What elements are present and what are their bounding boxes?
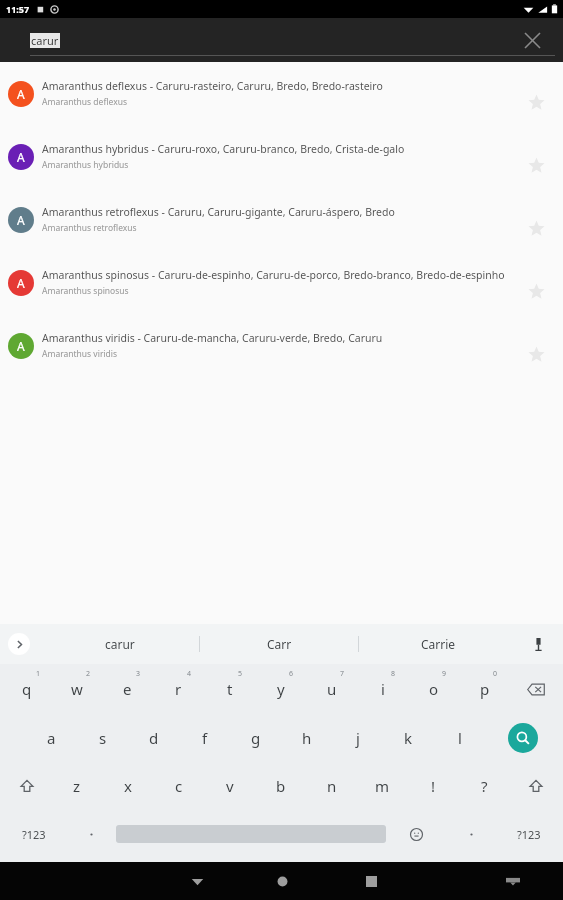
staticText: d [149,728,159,748]
staticText: e [123,679,132,699]
staticText: 0 [493,669,498,679]
staticText: b [276,776,286,796]
staticText: A [17,149,25,165]
button[interactable]: d [128,714,179,762]
button[interactable]: Backspace [510,664,561,714]
button[interactable]: Home [263,862,301,900]
button[interactable]: z [52,762,102,810]
staticText: f [202,728,208,748]
button[interactable]: w [52,664,102,714]
button[interactable]: m [357,762,408,810]
button[interactable]: Shift [510,762,561,810]
button[interactable]: A [0,125,563,188]
staticText: Amaranthus hybridus - Caruru-roxo, Carur… [42,142,405,156]
button[interactable]: carur [30,33,60,48]
button[interactable]: q [2,664,52,714]
staticText: p [480,679,490,699]
button[interactable]: n [306,762,357,810]
button[interactable]: Favorite [519,211,553,245]
button[interactable]: y [255,664,306,714]
button[interactable]: Favorite [519,148,553,182]
staticText: 2 [86,669,91,679]
button[interactable]: More suggestions [8,633,30,655]
staticText: A [17,212,25,228]
button[interactable]: o [408,664,459,714]
staticText: o [429,679,439,699]
button[interactable]: v [204,762,255,810]
staticText: i [381,679,385,699]
button[interactable]: ! [408,762,459,810]
staticText: Amaranthus deflexus [42,96,127,108]
staticText: Amaranthus spinosus [42,285,129,297]
button[interactable]: h [281,714,332,762]
staticText: h [302,728,312,748]
button[interactable]: Carrie [359,624,517,664]
staticText: j [356,728,360,748]
button[interactable]: A [0,251,563,314]
button[interactable]: s [77,714,128,762]
staticText: m [375,776,390,796]
button[interactable]: Emoji [386,810,446,858]
button[interactable]: Voice input [523,629,553,659]
button[interactable]: a [26,714,77,762]
button[interactable]: Search [485,714,561,762]
button[interactable]: p [459,664,510,714]
staticText: s [99,728,107,748]
staticText: v [226,776,234,796]
staticText: Amaranthus retroflexus - Caruru, Caruru-… [42,205,395,219]
staticText: carur [105,636,135,652]
staticText: ! [431,776,436,796]
button[interactable]: Shift [2,762,52,810]
staticText: Amaranthus viridis - Caruru-de-mancha, C… [42,331,383,345]
button[interactable]: k [383,714,434,762]
button[interactable]: A [0,314,563,377]
staticText: Carr [267,636,292,652]
button[interactable]: Close search [515,23,549,57]
staticText: A [17,338,25,354]
staticText: Amaranthus viridis [42,348,118,360]
staticText: z [73,776,81,796]
staticText: 4 [187,669,192,679]
button[interactable]: Period [446,810,496,858]
button[interactable]: x [102,762,153,810]
staticText: Amaranthus spinosus - Caruru-de-espinho,… [42,268,505,282]
button[interactable]: j [332,714,383,762]
staticText: y [277,679,285,699]
button[interactable]: u [306,664,357,714]
button[interactable]: A [0,62,563,125]
button[interactable]: Carr [200,624,358,664]
button[interactable]: i [357,664,408,714]
button[interactable]: f [179,714,230,762]
button[interactable]: Comma [66,810,116,858]
button[interactable]: r [153,664,204,714]
button[interactable]: ?123 [496,810,561,858]
staticText: 5 [238,669,243,679]
button[interactable]: Switch keyboard [494,862,532,900]
button[interactable]: ? [459,762,510,810]
staticText: g [251,728,261,748]
button[interactable]: g [230,714,281,762]
button[interactable]: l [434,714,485,762]
button[interactable]: e [102,664,153,714]
button[interactable]: A [0,188,563,251]
button[interactable]: Recents [352,862,390,900]
button[interactable]: t [204,664,255,714]
staticText: 1 [36,669,41,679]
button[interactable]: c [153,762,204,810]
staticText: l [458,728,462,748]
staticText: A [17,86,25,102]
staticText: q [22,679,32,699]
button[interactable]: carur [40,624,199,664]
button[interactable]: Favorite [519,337,553,371]
staticText: r [175,679,182,699]
staticText: Amaranthus retroflexus [42,222,137,234]
button[interactable]: ?123 [2,810,66,858]
button[interactable]: Hide keyboard [178,862,216,900]
button[interactable]: Favorite [519,85,553,119]
staticText: 6 [289,669,294,679]
button[interactable]: Favorite [519,274,553,308]
button[interactable]: b [255,762,306,810]
staticText: ?123 [517,827,541,842]
staticText: x [124,776,132,796]
